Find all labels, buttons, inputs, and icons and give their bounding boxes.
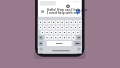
button[interactable]: Emoji <box>40 47 43 50</box>
button[interactable]: Return <box>74 41 81 46</box>
staticText: Hello! How can I help you <box>47 8 88 12</box>
button[interactable]: Space <box>47 41 73 46</box>
button[interactable]: Send <box>76 10 80 14</box>
button[interactable]: Message text <box>47 9 72 14</box>
button[interactable]: Message bubble <box>39 1 56 6</box>
button[interactable]: Backspace <box>77 35 82 39</box>
button[interactable]: Numbers <box>39 41 43 46</box>
staticText: I need help with my <box>47 11 79 15</box>
button[interactable]: Shift <box>39 35 44 39</box>
button[interactable]: Microphone <box>77 47 80 50</box>
